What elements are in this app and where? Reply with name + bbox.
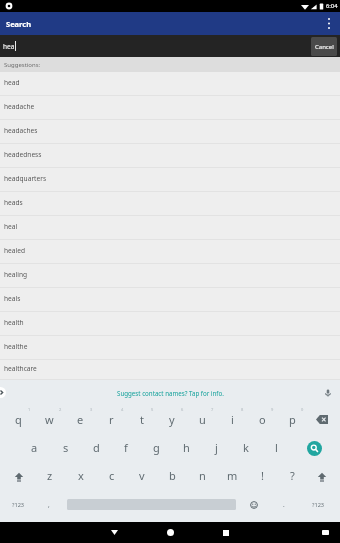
button[interactable]: heads <box>0 192 340 216</box>
button[interactable]: healthcare <box>0 360 340 380</box>
staticText: head <box>4 78 20 87</box>
button[interactable]: 6 <box>157 405 187 433</box>
staticText: healthcare <box>4 364 37 373</box>
staticText: n <box>199 468 206 483</box>
button[interactable]: 9 <box>247 405 277 433</box>
staticText: 7 <box>211 407 214 412</box>
staticText: health <box>4 318 24 327</box>
button[interactable]: More options <box>318 12 340 35</box>
button[interactable]: d <box>81 433 111 461</box>
button[interactable]: 8 <box>217 405 247 433</box>
button[interactable]: l <box>261 433 291 461</box>
staticText: v <box>139 468 145 483</box>
staticText: a <box>31 440 38 455</box>
button[interactable]: Home <box>142 522 198 543</box>
staticText: headache <box>4 102 35 111</box>
button[interactable]: b <box>157 461 187 490</box>
button[interactable]: healing <box>0 264 340 288</box>
staticText: hea <box>3 42 15 51</box>
staticText: k <box>243 440 249 455</box>
staticText: 4 <box>121 407 124 412</box>
staticText: e <box>77 412 84 427</box>
button[interactable]: Shift <box>307 461 337 490</box>
button[interactable]: Voice input <box>321 386 335 400</box>
button[interactable]: Expand suggestions <box>0 387 6 398</box>
button[interactable]: Shift <box>3 461 34 490</box>
button[interactable]: Recents <box>198 522 254 543</box>
button[interactable]: 7 <box>187 405 217 433</box>
staticText: ? <box>290 468 295 483</box>
staticText: 3 <box>90 407 93 412</box>
button[interactable]: Emoji <box>239 490 269 519</box>
button[interactable]: 4 <box>96 405 127 433</box>
staticText: q <box>15 412 22 427</box>
button[interactable]: c <box>96 461 127 490</box>
staticText: j <box>215 440 218 455</box>
button[interactable]: healthe <box>0 336 340 360</box>
staticText: ?123 <box>12 501 25 509</box>
staticText: healed <box>4 246 25 255</box>
staticText: ?123 <box>312 501 325 509</box>
staticText: 8 <box>241 407 244 412</box>
button[interactable]: m <box>217 461 247 490</box>
button[interactable]: g <box>141 433 171 461</box>
button[interactable]: z <box>34 461 65 490</box>
button[interactable]: ?123 <box>299 490 337 519</box>
button[interactable]: headedness <box>0 144 340 168</box>
button[interactable]: ? <box>277 461 307 490</box>
button[interactable]: v <box>127 461 157 490</box>
button[interactable]: 0 <box>277 405 307 433</box>
staticText: ! <box>261 468 264 483</box>
staticText: Cancel <box>315 43 334 51</box>
button[interactable]: x <box>65 461 96 490</box>
button[interactable]: n <box>187 461 217 490</box>
button[interactable]: 5 <box>127 405 157 433</box>
button[interactable]: f <box>111 433 141 461</box>
button[interactable]: head <box>0 72 340 96</box>
staticText: x <box>78 468 84 483</box>
staticText: l <box>275 440 278 455</box>
staticText: b <box>169 468 176 483</box>
button[interactable]: Backspace <box>307 405 337 433</box>
staticText: heal <box>4 222 18 231</box>
button[interactable]: heals <box>0 288 340 312</box>
button[interactable]: s <box>50 433 81 461</box>
button[interactable]: healed <box>0 240 340 264</box>
button[interactable]: Hide keyboard <box>322 530 329 535</box>
staticText: . <box>283 500 285 509</box>
staticText: 0 <box>301 407 304 412</box>
button[interactable]: Cancel <box>311 37 337 56</box>
staticText: g <box>153 440 160 455</box>
button[interactable]: h <box>171 433 201 461</box>
button[interactable]: j <box>201 433 231 461</box>
staticText: f <box>124 440 128 455</box>
staticText: h <box>183 440 190 455</box>
button[interactable]: health <box>0 312 340 336</box>
staticText: w <box>45 412 54 427</box>
button[interactable]: ! <box>247 461 277 490</box>
button[interactable]: headache <box>0 96 340 120</box>
button[interactable]: 3 <box>65 405 96 433</box>
button[interactable]: heal <box>0 216 340 240</box>
staticText: headedness <box>4 150 42 159</box>
staticText: , <box>48 500 50 509</box>
staticText: headaches <box>4 126 38 135</box>
button[interactable]: headaches <box>0 120 340 144</box>
button[interactable]: k <box>231 433 261 461</box>
button[interactable]: ?123 <box>3 490 34 519</box>
button[interactable]: 2 <box>34 405 65 433</box>
staticText: healing <box>4 270 28 279</box>
button[interactable]: headquarters <box>0 168 340 192</box>
staticText: y <box>169 412 175 427</box>
button[interactable]: 1 <box>3 405 34 433</box>
button[interactable]: Back <box>86 522 142 543</box>
button[interactable]: Search <box>291 433 337 461</box>
button[interactable]: a <box>19 433 50 461</box>
staticText: t <box>140 412 144 427</box>
staticText: m <box>227 468 238 483</box>
staticText: Suggest contact names? Tap for info. <box>117 389 224 397</box>
staticText: p <box>289 412 296 427</box>
